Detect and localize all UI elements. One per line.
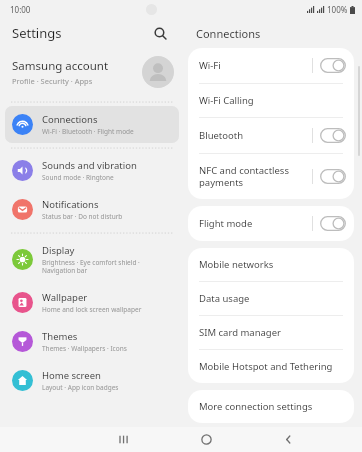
button[interactable]: Themes — [5, 323, 179, 360]
staticText: Layout · App icon badges — [42, 383, 119, 392]
button[interactable]: Wallpaper — [5, 284, 179, 321]
staticText: Wallpaper — [42, 291, 88, 304]
button[interactable]: Search — [148, 21, 172, 45]
button[interactable]: Notifications — [5, 191, 179, 228]
staticText: Home screen — [42, 369, 101, 382]
staticText: Themes — [42, 330, 78, 343]
button[interactable]: Wi-Fi Calling — [188, 84, 354, 117]
staticText: Data usage — [199, 292, 346, 305]
staticText: Bluetooth — [199, 129, 306, 142]
button[interactable]: Toggle — [320, 128, 346, 143]
staticText: Connections — [196, 26, 261, 41]
staticText: SIM card manager — [199, 326, 346, 339]
button[interactable]: Samsung account — [0, 48, 184, 98]
staticText: Themes · Wallpapers · Icons — [42, 344, 127, 353]
button[interactable]: Recents — [83, 427, 165, 452]
staticText: Connections — [42, 113, 98, 126]
staticText: Wi-Fi · Bluetooth · Flight mode — [42, 127, 134, 136]
staticText: Notifications — [42, 198, 99, 211]
button[interactable]: Mobile networks — [188, 248, 354, 281]
button[interactable]: Mobile Hotspot and Tethering — [188, 350, 354, 383]
staticText: Profile · Security · Apps — [12, 76, 93, 86]
staticText: NFC and contactless payments — [199, 164, 306, 189]
button[interactable]: Bluetooth — [188, 118, 354, 153]
staticText: Mobile networks — [199, 258, 346, 271]
staticText: 10:00 — [10, 4, 31, 15]
button[interactable]: Connections — [5, 106, 179, 143]
button[interactable]: Data usage — [188, 282, 354, 315]
staticText: Status bar · Do not disturb — [42, 212, 123, 221]
staticText: Brightness · Eye comfort shield · Naviga… — [42, 258, 140, 275]
button[interactable]: Wi-Fi — [188, 48, 354, 83]
button[interactable]: Toggle — [320, 58, 346, 73]
staticText: Home and lock screen wallpaper — [42, 305, 142, 314]
button[interactable]: More connection settings — [188, 390, 354, 423]
button[interactable]: Toggle — [320, 216, 346, 231]
staticText: Wi-Fi Calling — [199, 94, 346, 107]
button[interactable]: Flight mode — [188, 206, 354, 241]
staticText: Sound mode · Ringtone — [42, 173, 114, 182]
staticText: Settings — [12, 24, 62, 42]
button[interactable]: NFC and contactless payments — [188, 154, 354, 199]
staticText: 100% — [327, 4, 348, 15]
staticText: Sounds and vibration — [42, 159, 137, 172]
button[interactable]: Home screen — [5, 362, 179, 399]
staticText: Flight mode — [199, 217, 306, 230]
button[interactable]: Display — [5, 237, 179, 282]
staticText: Looking for something else? — [199, 439, 325, 452]
staticText: Wi-Fi — [199, 59, 306, 72]
button[interactable]: SIM card manager — [188, 316, 354, 349]
staticText: More connection settings — [199, 400, 346, 413]
staticText: Mobile Hotspot and Tethering — [199, 360, 346, 373]
button[interactable]: Sounds and vibration — [5, 152, 179, 189]
button[interactable]: Back — [247, 427, 329, 452]
staticText: Display — [42, 244, 75, 257]
button[interactable]: Home — [165, 427, 247, 452]
button[interactable]: Toggle — [320, 169, 346, 184]
button[interactable]: Looking for something else? — [188, 430, 354, 452]
staticText: Samsung account — [12, 58, 109, 74]
